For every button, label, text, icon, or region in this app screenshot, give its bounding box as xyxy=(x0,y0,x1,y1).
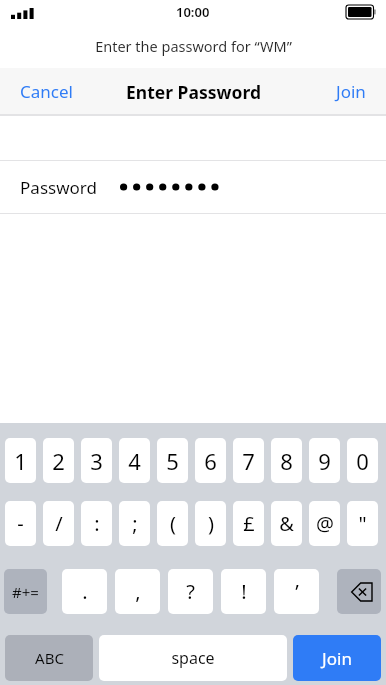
staticText: ’ xyxy=(295,578,299,605)
staticText: 4 xyxy=(128,446,141,476)
staticText: Enter the password for “WM” xyxy=(95,36,292,56)
button[interactable]: @ xyxy=(309,501,340,546)
button[interactable]: & xyxy=(271,501,302,546)
staticText: 8 xyxy=(280,446,293,476)
button[interactable]: Cancel xyxy=(0,68,93,115)
staticText: ABC xyxy=(35,648,64,668)
button[interactable]: ( xyxy=(157,501,188,546)
button[interactable]: 3 xyxy=(81,438,112,483)
staticText: Join xyxy=(336,80,366,103)
staticText: 2 xyxy=(52,446,65,476)
button[interactable]: Join xyxy=(293,635,381,681)
staticText: space xyxy=(171,647,215,669)
staticText: - xyxy=(17,510,24,537)
staticText: ! xyxy=(241,578,247,605)
button[interactable]: 0 xyxy=(347,438,378,483)
staticText: " xyxy=(358,510,367,537)
button[interactable]: " xyxy=(347,501,378,546)
button[interactable]: 5 xyxy=(157,438,188,483)
staticText: ; xyxy=(132,510,138,537)
button[interactable]: ! xyxy=(221,569,266,614)
staticText: 9 xyxy=(318,446,331,476)
staticText: 6 xyxy=(204,446,217,476)
button[interactable]: ’ xyxy=(274,569,319,614)
button[interactable]: #+= xyxy=(4,569,47,614)
staticText: Enter Password xyxy=(126,80,261,104)
staticText: #+= xyxy=(12,582,39,602)
button[interactable]: Password xyxy=(0,161,386,213)
staticText: Password xyxy=(20,176,97,199)
staticText: . xyxy=(82,578,88,605)
button[interactable]: 2 xyxy=(43,438,74,483)
staticText: 10:00 xyxy=(176,3,210,21)
button[interactable]: space xyxy=(99,635,287,681)
button[interactable]: . xyxy=(62,569,107,614)
staticText: ) xyxy=(208,510,214,537)
button[interactable]: £ xyxy=(233,501,264,546)
button[interactable]: 7 xyxy=(233,438,264,483)
button[interactable]: ? xyxy=(168,569,213,614)
staticText: : xyxy=(94,510,100,537)
button[interactable]: : xyxy=(81,501,112,546)
staticText: Join xyxy=(322,647,352,670)
button[interactable]: 1 xyxy=(5,438,36,483)
button[interactable]: Backspace xyxy=(337,569,381,614)
button[interactable]: ) xyxy=(195,501,226,546)
button[interactable]: ABC xyxy=(5,635,93,681)
staticText: ( xyxy=(170,510,176,537)
staticText: £ xyxy=(243,510,255,537)
staticText: 3 xyxy=(90,446,103,476)
button[interactable]: 9 xyxy=(309,438,340,483)
button[interactable]: - xyxy=(5,501,36,546)
button[interactable]: / xyxy=(43,501,74,546)
button[interactable]: ; xyxy=(119,501,150,546)
staticText: ? xyxy=(186,578,195,605)
button[interactable]: , xyxy=(115,569,160,614)
button[interactable]: 6 xyxy=(195,438,226,483)
staticText: 1 xyxy=(14,446,27,476)
button[interactable]: Join xyxy=(316,68,386,115)
button[interactable]: 4 xyxy=(119,438,150,483)
staticText: @ xyxy=(316,510,334,537)
staticText: Cancel xyxy=(20,80,73,103)
staticText: / xyxy=(55,510,63,537)
staticText: 5 xyxy=(166,446,179,476)
button[interactable]: 8 xyxy=(271,438,302,483)
staticText: & xyxy=(279,510,294,537)
staticText: 0 xyxy=(356,446,369,476)
staticText: , xyxy=(135,578,141,605)
staticText: 7 xyxy=(242,446,255,476)
